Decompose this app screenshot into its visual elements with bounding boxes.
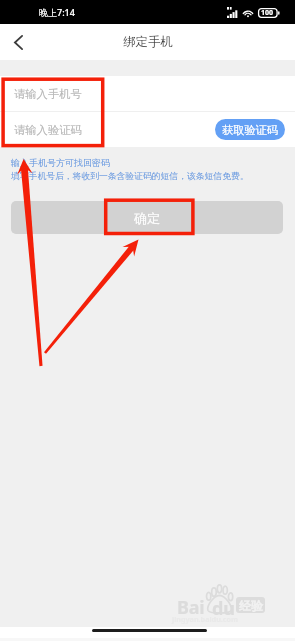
staticText: jingyan.baidu.com [172, 614, 239, 624]
staticText: du [212, 596, 235, 621]
button[interactable]: 获取验证码 [215, 119, 285, 140]
staticText: 填写手机号后，将收到一条含验证码的短信，该条短信免费。 [11, 171, 249, 182]
staticText: 输入手机号方可找回密码 [11, 157, 110, 168]
staticText: 获取验证码 [222, 123, 278, 137]
staticText: 晚上7:14 [39, 6, 75, 18]
button[interactable]: Back [0, 24, 37, 60]
staticText: 经验 [239, 598, 263, 613]
button[interactable]: 确定 [11, 201, 283, 234]
staticText: 请输入手机号 [14, 87, 82, 101]
staticText: 请输入验证码 [14, 123, 82, 137]
staticText: 绑定手机 [123, 34, 173, 50]
staticText: 100 [261, 8, 274, 18]
staticText: Bai [177, 595, 205, 620]
staticText: 确定 [134, 210, 160, 226]
